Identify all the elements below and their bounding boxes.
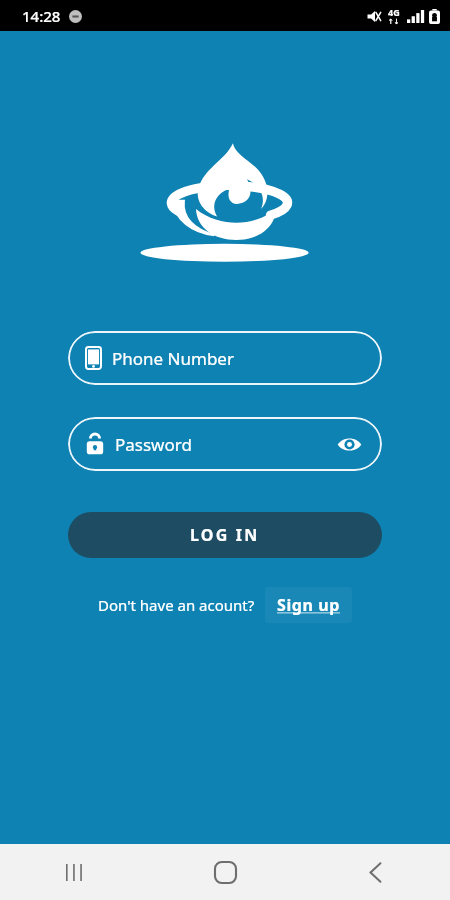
button[interactable]: Show password (334, 429, 364, 459)
staticText: Sign up (277, 594, 340, 616)
staticText: Don't have an acount? (98, 595, 255, 615)
button[interactable]: Sign up (265, 587, 352, 623)
button[interactable]: Phone Number (68, 331, 382, 385)
staticText: 4G (388, 6, 400, 18)
staticText: 14:28 (22, 6, 61, 26)
staticText: LOG IN (190, 524, 260, 546)
button[interactable]: LOG IN (68, 512, 382, 558)
staticText: Password (115, 433, 192, 456)
button[interactable]: Recent apps (0, 844, 150, 900)
button[interactable]: Home (150, 844, 300, 900)
button[interactable]: Back (300, 844, 450, 900)
button[interactable]: Password (68, 417, 382, 471)
staticText: Phone Number (112, 347, 234, 370)
staticText: ↑↓ (388, 18, 400, 26)
